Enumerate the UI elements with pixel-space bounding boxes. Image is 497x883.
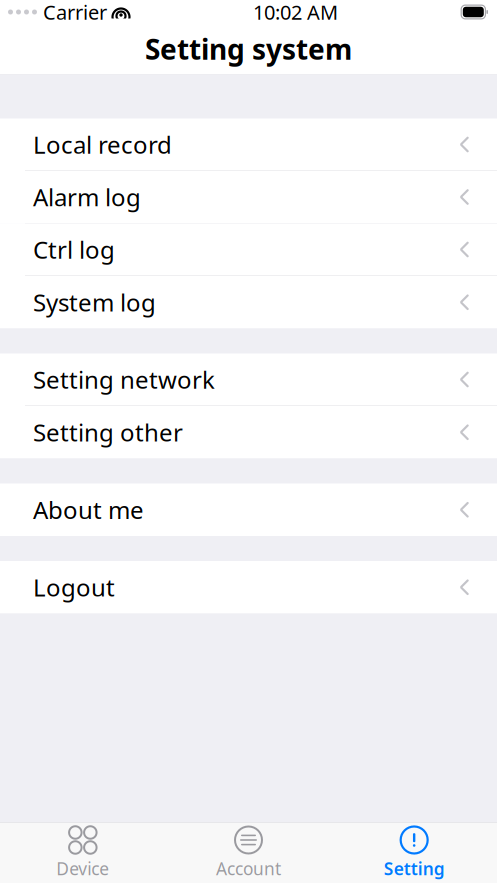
staticText: Carrier	[43, 0, 107, 25]
button[interactable]: Logout	[0, 561, 497, 613]
staticText: Setting	[384, 857, 445, 880]
button[interactable]: System log	[0, 276, 497, 328]
staticText: Local record	[33, 129, 172, 160]
staticText: System log	[33, 286, 156, 318]
button[interactable]: Ctrl log	[0, 223, 497, 276]
staticText: Setting system	[145, 30, 352, 68]
button[interactable]: Device	[0, 823, 166, 883]
staticText: Account	[216, 857, 281, 880]
staticText: About me	[33, 494, 144, 526]
staticText: Alarm log	[33, 181, 141, 213]
staticText: Setting other	[33, 416, 183, 448]
button[interactable]: Account	[166, 823, 331, 883]
button[interactable]: About me	[0, 483, 497, 536]
staticText: Logout	[33, 571, 115, 603]
button[interactable]: Setting network	[0, 353, 497, 406]
button[interactable]: Local record	[0, 118, 497, 171]
button[interactable]: Setting other	[0, 406, 497, 458]
staticText: Device	[56, 857, 109, 880]
button[interactable]: Setting	[331, 823, 497, 883]
staticText: Ctrl log	[33, 234, 115, 265]
staticText: Setting network	[33, 364, 215, 395]
button[interactable]: Alarm log	[0, 171, 497, 223]
staticText: 10:02 AM	[253, 0, 338, 25]
